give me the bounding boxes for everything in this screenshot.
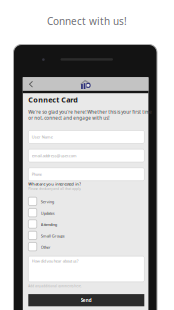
button[interactable]: Small Groups: [28, 231, 144, 240]
staticText: Updates: [41, 210, 55, 216]
staticText: or not, connect and engage with us!: [28, 115, 109, 121]
button[interactable]: Phone: [28, 168, 144, 181]
button[interactable]: Other: [28, 242, 144, 251]
staticText: Small Groups: [41, 233, 65, 239]
staticText: Other: [41, 244, 51, 250]
button[interactable]: How did you hear about us?: [28, 256, 144, 282]
staticText: Phone: [32, 172, 42, 177]
button[interactable]: Send: [28, 294, 144, 306]
staticText: Add any additional comments here.: [28, 284, 82, 288]
staticText: How did you hear about us?: [32, 258, 79, 263]
button[interactable]: Serving: [28, 197, 144, 205]
button[interactable]: User Name: [28, 130, 144, 143]
staticText: Serving: [41, 199, 54, 204]
staticText: We're so glad you're here! Whether this …: [28, 109, 152, 115]
staticText: Please check any and all that apply.: [28, 187, 81, 191]
button[interactable]: email.address@user.com: [28, 149, 144, 162]
button[interactable]: Attending: [28, 220, 144, 228]
staticText: Attending: [41, 222, 57, 227]
staticText: email.address@user.com: [32, 153, 77, 158]
button[interactable]: Updates: [28, 208, 144, 217]
staticText: Send: [81, 297, 92, 303]
staticText: User Name: [32, 134, 53, 140]
staticText: Connect with us!: [47, 14, 127, 28]
staticText: Connect Card: [28, 95, 78, 105]
staticText: What are you interested in?: [28, 181, 81, 187]
button[interactable]: Back: [24, 77, 37, 91]
